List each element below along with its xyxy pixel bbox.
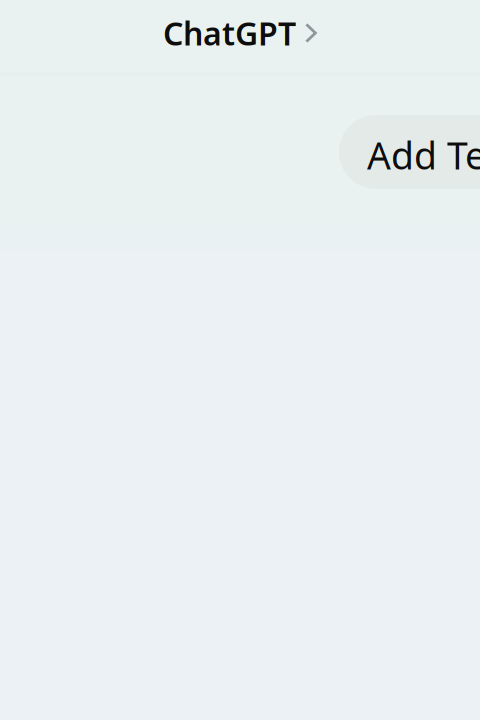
staticText: Add Text [367,130,480,180]
staticText: ChatGPT [163,12,296,54]
button[interactable]: ChatGPT [153,4,327,62]
button[interactable]: Add Text [339,115,480,189]
